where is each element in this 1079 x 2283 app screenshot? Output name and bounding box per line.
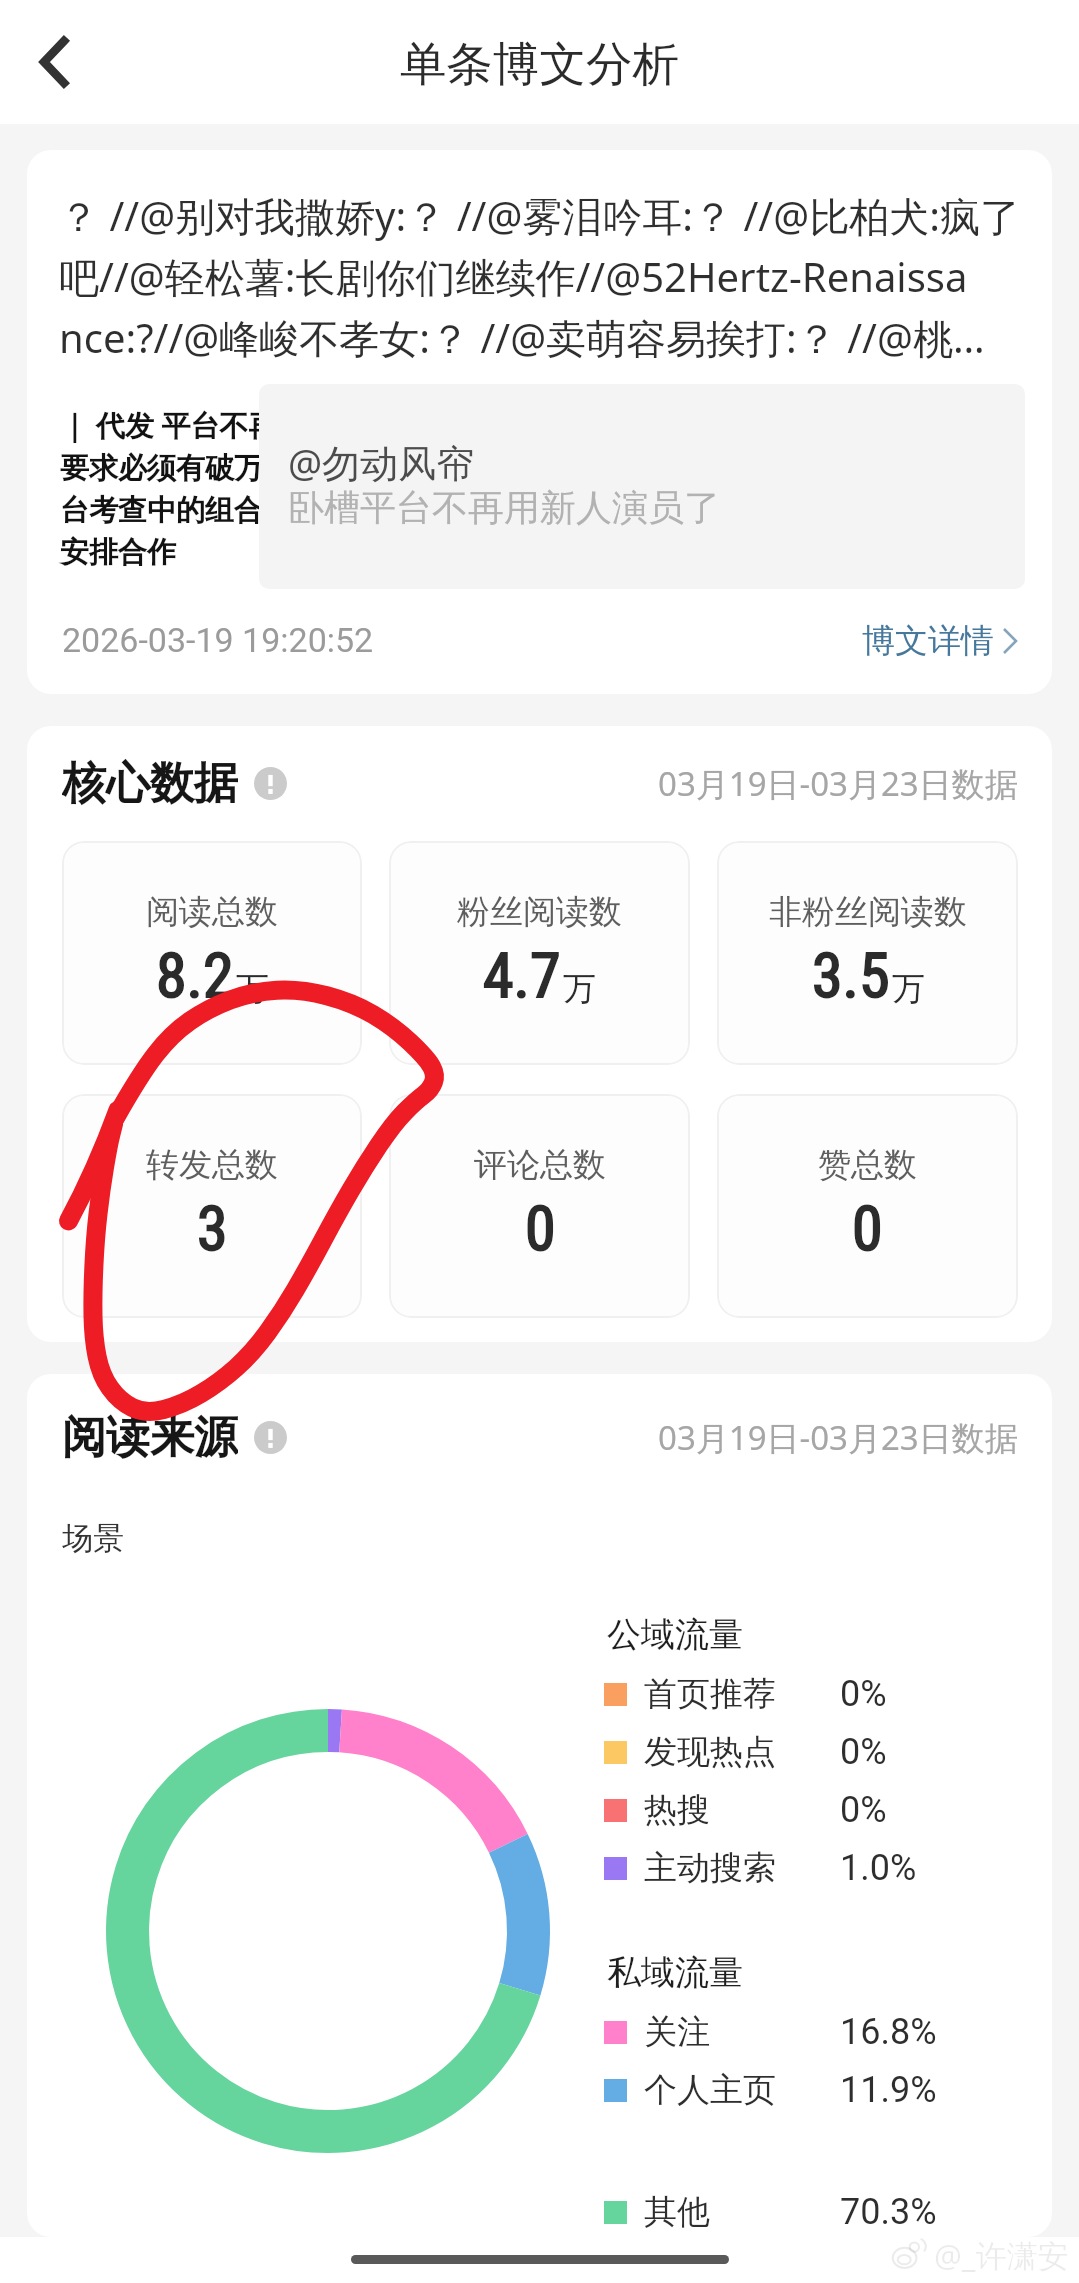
staticText: 发现热点 [644,1731,776,1773]
staticText: 万 [563,968,596,1010]
staticText: 赞总数 [818,1144,917,1186]
staticText: ｜ 代发 平台不再用新人演员了 要求必须有破万的作品 台考查中的组合成员优先 安… [60,405,452,571]
staticText: ？ //@别对我撒娇y:？ //@雾泪吟耳:？ //@比柏犬:疯了 吧//@轻松… [59,188,1020,365]
staticText: @勿动风帘 [288,436,475,488]
staticText: 阅读来源 [62,1410,238,1464]
button[interactable]: 非粉丝阅读数 [717,841,1018,1065]
button[interactable]: 个人主页 [551,2061,951,2119]
staticText: 1.0% [840,1847,917,1889]
staticText: 03月19日-03月23日数据 [658,1415,1018,1460]
staticText: 个人主页 [644,2069,776,2111]
staticText: 万 [892,968,925,1010]
staticText: 0 [525,1192,556,1265]
staticText: 0% [840,1731,887,1773]
button[interactable]: 阅读总数 [62,841,362,1065]
staticText: 评论总数 [474,1144,606,1186]
button[interactable]: 评论总数 [389,1094,690,1318]
staticText: 8.2 [156,939,234,1012]
button[interactable]: Back [12,20,96,104]
button[interactable]: Info [254,767,287,800]
button[interactable]: @勿动风帘 [259,384,1025,589]
staticText: 公域流量 [607,1613,743,1656]
staticText: @_许潇安 [934,2234,1069,2276]
staticText: 4.7 [483,939,561,1012]
staticText: 单条博文分析 [400,35,679,94]
staticText: 场景 [62,1519,124,1558]
staticText: 私域流量 [607,1951,743,1994]
staticText: 转发总数 [146,1144,278,1186]
button[interactable]: 首页推荐 [551,1665,951,1723]
staticText: 卧槽平台不再用新人演员了 [288,485,720,530]
staticText: 核心数据 [62,756,238,810]
button[interactable]: 主动搜索 [551,1839,951,1897]
staticText: 粉丝阅读数 [457,891,622,933]
staticText: 关注 [644,2011,710,2053]
button[interactable]: 发现热点 [551,1723,951,1781]
staticText: 2026-03-19 19:20:52 [62,620,374,660]
staticText: 0 [852,1192,883,1265]
button[interactable]: 转发总数 [62,1094,362,1318]
button[interactable]: 粉丝阅读数 [389,841,690,1065]
staticText: 万 [236,968,269,1010]
staticText: 03月19日-03月23日数据 [658,761,1018,806]
button[interactable]: 关注 [551,2003,951,2061]
staticText: 0% [840,1673,887,1715]
button[interactable]: 热搜 [551,1781,951,1839]
button[interactable]: 博文详情 [862,616,1018,666]
button[interactable]: Info [254,1421,287,1454]
staticText: 70.3% [840,2191,937,2233]
staticText: 3 [197,1192,228,1265]
staticText: 热搜 [644,1789,710,1831]
staticText: 11.9% [840,2069,937,2111]
button[interactable]: 其他 [551,2183,951,2237]
staticText: 首页推荐 [644,1673,776,1715]
staticText: 其他 [644,2191,710,2233]
staticText: 阅读总数 [146,891,278,933]
staticText: 主动搜索 [644,1847,776,1889]
staticText: 博文详情 [862,620,994,662]
staticText: 非粉丝阅读数 [769,891,967,933]
staticText: 3.5 [812,939,890,1012]
staticText: 0% [840,1789,887,1831]
staticText: 16.8% [840,2011,937,2053]
button[interactable]: 赞总数 [717,1094,1018,1318]
